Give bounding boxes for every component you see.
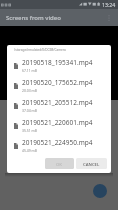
staticText: OK [56, 161, 63, 167]
button[interactable]: Add [93, 184, 107, 198]
button[interactable]: 20190521_205512.mp4 [7, 95, 111, 115]
staticText: /storage/emulated/0/DCIM/Camera [14, 48, 66, 52]
button[interactable]: CANCEL [76, 158, 107, 169]
button[interactable]: 20190521_224950.mp4 [7, 135, 111, 155]
button[interactable]: 20190518_195341.mp4 [7, 55, 111, 75]
staticText: 67.11 mB [22, 68, 37, 73]
button[interactable]: 20190521_220601.mp4 [7, 115, 111, 135]
staticText: 37.04 mB [22, 108, 37, 113]
staticText: Screens from video [6, 14, 61, 22]
staticText: 20190521_205512.mp4 [22, 98, 93, 107]
button[interactable]: 20190520_175652.mp4 [7, 75, 111, 95]
staticText: 13:24 [102, 1, 116, 8]
button[interactable]: OK [45, 158, 74, 169]
staticText: 20.03 mB [22, 88, 37, 93]
staticText: 20190518_195341.mp4 [22, 58, 93, 67]
staticText: 20190521_224950.mp4 [22, 138, 93, 147]
staticText: 35.51 mB [22, 128, 37, 133]
staticText: 20190520_175652.mp4 [22, 78, 93, 87]
staticText: CANCEL [83, 161, 100, 167]
staticText: 20190521_220601.mp4 [22, 118, 93, 127]
staticText: 45.49 mB [22, 148, 37, 153]
